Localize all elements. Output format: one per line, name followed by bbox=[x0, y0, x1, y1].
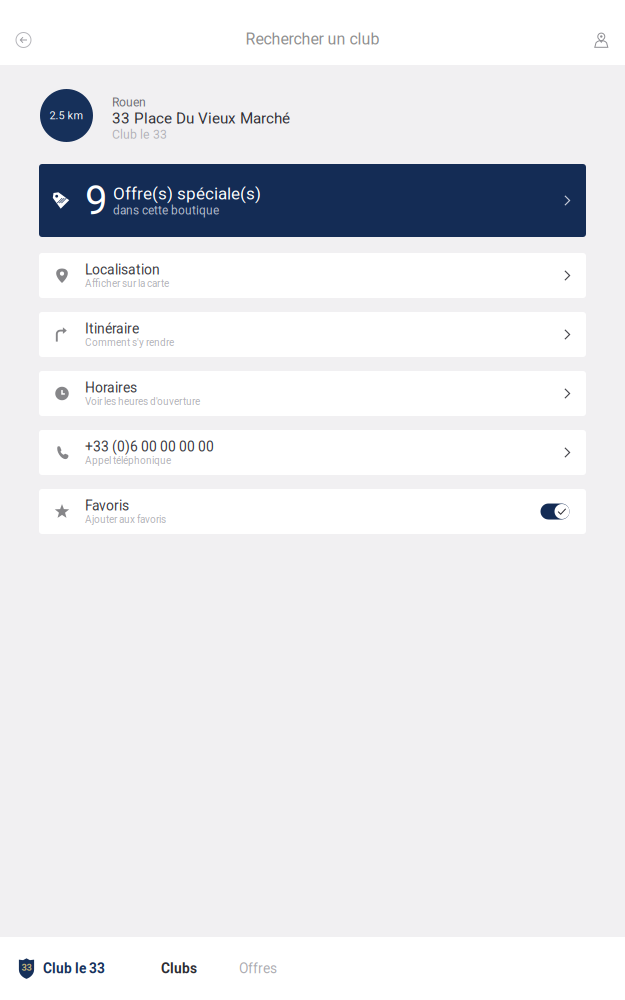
staticText: 9 bbox=[85, 177, 107, 224]
staticText: Afficher sur la carte bbox=[85, 278, 169, 289]
staticText: Club le 33 bbox=[112, 127, 167, 142]
staticText: 2.5 km bbox=[49, 109, 83, 122]
button[interactable]: +33 (0)6 00 00 00 00 bbox=[39, 430, 586, 475]
button[interactable]: Horaires bbox=[39, 371, 586, 416]
staticText: Localisation bbox=[85, 261, 160, 278]
staticText: dans cette boutique bbox=[113, 203, 219, 217]
staticText: Clubs bbox=[161, 960, 197, 977]
staticText: Rouen bbox=[112, 95, 146, 109]
staticText: 33 Place Du Vieux Marché bbox=[112, 109, 290, 127]
staticText: Comment s'y rendre bbox=[85, 337, 174, 348]
button[interactable]: Localisation bbox=[39, 253, 586, 298]
staticText: Favoris bbox=[85, 497, 129, 514]
staticText: Ajouter aux favoris bbox=[85, 514, 166, 525]
button[interactable]: Account bbox=[578, 15, 625, 65]
button[interactable]: Itinéraire bbox=[39, 312, 586, 357]
staticText: Appel téléphonique bbox=[85, 455, 171, 466]
button[interactable]: 33 bbox=[0, 946, 119, 991]
staticText: Club le 33 bbox=[43, 960, 105, 977]
button[interactable]: 9 bbox=[39, 164, 586, 237]
staticText: Voir les heures d'ouverture bbox=[85, 396, 200, 407]
button[interactable]: Back bbox=[0, 15, 47, 65]
staticText: Horaires bbox=[85, 379, 137, 396]
button[interactable]: Favoris bbox=[39, 489, 586, 534]
staticText: Offres bbox=[239, 960, 277, 977]
button[interactable]: Clubs bbox=[119, 948, 217, 989]
staticText: Rechercher un club bbox=[245, 30, 379, 48]
staticText: Offre(s) spéciale(s) bbox=[113, 183, 261, 203]
button[interactable]: Offres bbox=[217, 948, 299, 989]
staticText: 33 bbox=[21, 962, 31, 973]
staticText: Itinéraire bbox=[85, 320, 139, 337]
staticText: +33 (0)6 00 00 00 00 bbox=[85, 438, 214, 455]
